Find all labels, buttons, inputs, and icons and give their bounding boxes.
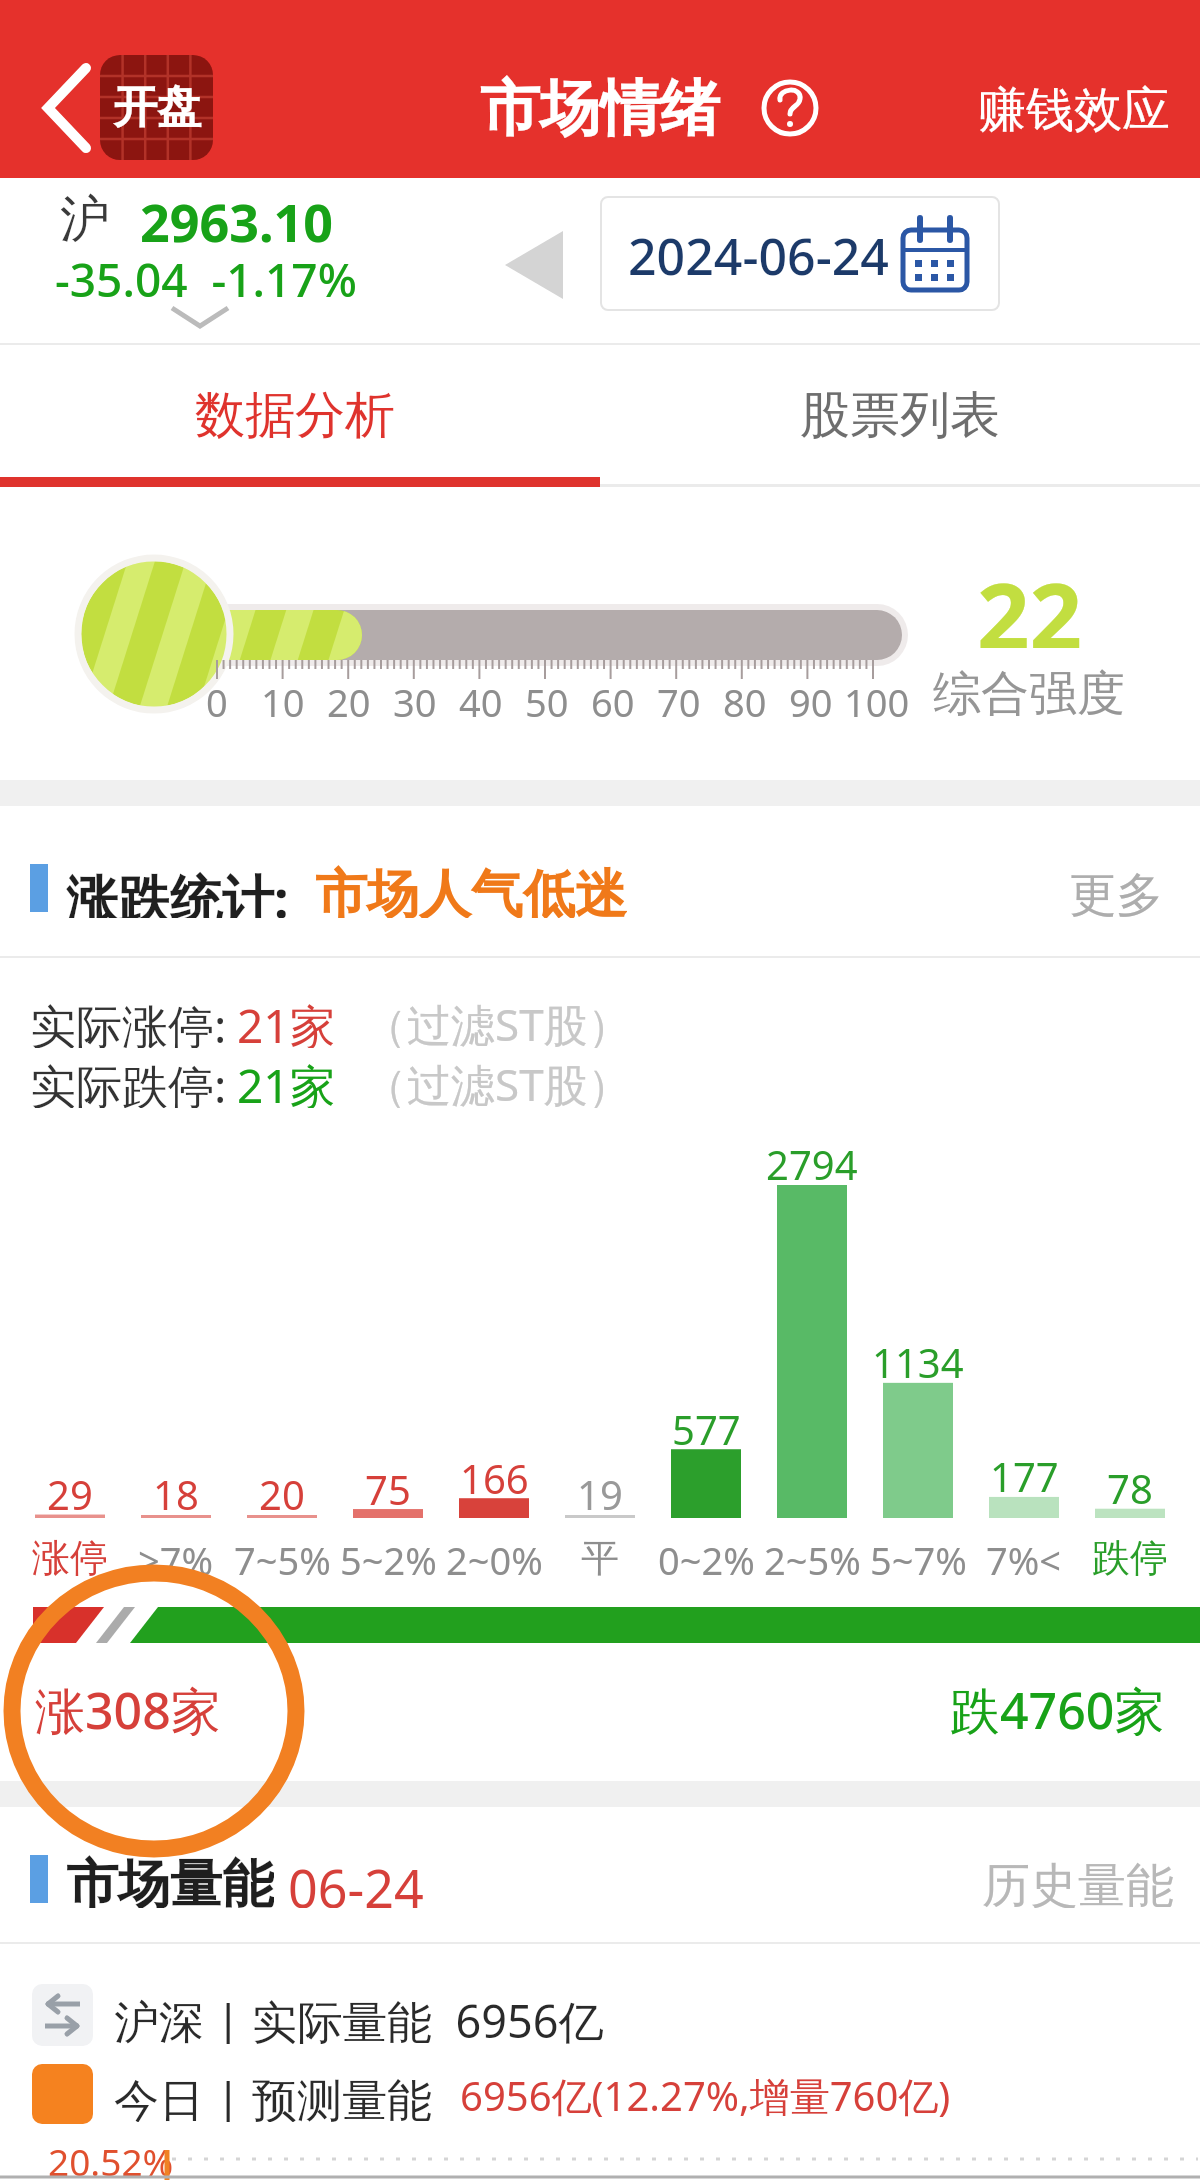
staticText: 实际涨停: <box>30 994 227 1048</box>
staticText: 股票列表 <box>800 384 1000 442</box>
staticText: （过滤ST股） <box>363 994 632 1048</box>
staticText: 2794 <box>766 1137 858 1181</box>
staticText: 29 <box>47 1467 93 1511</box>
staticText: 90 <box>789 676 833 718</box>
staticText: 7~5% <box>234 1534 331 1576</box>
staticText: 2~0% <box>446 1534 543 1576</box>
staticText: 0~2% <box>658 1534 755 1576</box>
staticText: 18 <box>153 1467 199 1511</box>
staticText: 50 <box>525 676 569 718</box>
staticText: 6956亿(12.27%,增量760亿) <box>460 2068 951 2122</box>
staticText: 10 <box>261 676 305 718</box>
staticText: 21家 <box>237 994 336 1048</box>
staticText: 1134 <box>872 1335 964 1379</box>
staticText: 100 <box>844 676 910 718</box>
staticText: >7% <box>138 1534 214 1576</box>
staticText: 78 <box>1107 1461 1153 1505</box>
staticText: 30 <box>393 676 437 718</box>
staticText: 市场量能 <box>66 1852 274 1908</box>
staticText: 70 <box>657 676 701 718</box>
staticText: （过滤ST股） <box>363 1054 632 1108</box>
staticText: 21家 <box>237 1054 336 1108</box>
staticText: 2024-06-24 <box>628 222 889 282</box>
staticText: 5~7% <box>870 1534 967 1576</box>
staticText: 0 <box>206 676 228 718</box>
staticText: 综合强度 <box>933 664 1125 716</box>
staticText: 跌4760家 <box>950 1676 1165 1736</box>
staticText: 60 <box>591 676 635 718</box>
staticText: 实际跌停: <box>30 1054 227 1108</box>
staticText: 40 <box>459 676 503 718</box>
staticText: 平 <box>581 1534 619 1576</box>
staticText: 177 <box>990 1449 1059 1493</box>
staticText: 2~5% <box>764 1534 861 1576</box>
staticText: 2963.10 <box>140 186 334 246</box>
staticText: 19 <box>577 1467 623 1511</box>
staticText: 市场人气低迷 <box>315 862 627 918</box>
staticText: 沪深 | 实际量能 6956亿 <box>114 1990 604 2044</box>
staticText: 7%< <box>986 1534 1062 1576</box>
staticText: 涨跌统计: <box>66 862 289 918</box>
staticText: 577 <box>672 1402 741 1446</box>
staticText: 跌停 <box>1092 1534 1168 1576</box>
staticText: -35.04 -1.17% <box>55 248 357 304</box>
staticText: 75 <box>365 1462 411 1506</box>
staticText: 20.52% <box>48 2136 174 2178</box>
staticText: 数据分析 <box>195 384 395 442</box>
staticText: 22 <box>977 552 1083 648</box>
staticText: 更多 <box>1069 866 1163 918</box>
staticText: 166 <box>460 1451 529 1495</box>
staticText: 市场情绪 <box>480 71 720 147</box>
staticText: 06-24 <box>288 1852 424 1908</box>
staticText: 涨308家 <box>35 1676 221 1736</box>
staticText: 80 <box>723 676 767 718</box>
staticText: 5~2% <box>340 1534 437 1576</box>
staticText: 涨停 <box>32 1534 108 1576</box>
staticText: 今日 | 预测量能 <box>114 2068 433 2122</box>
staticText: 历史量能 <box>982 1856 1174 1908</box>
staticText: 20 <box>327 676 371 718</box>
staticText: 20 <box>259 1467 305 1511</box>
staticText: 开盘 <box>113 80 201 135</box>
staticText: 沪 <box>60 188 110 244</box>
staticText: 赚钱效应 <box>978 80 1170 136</box>
